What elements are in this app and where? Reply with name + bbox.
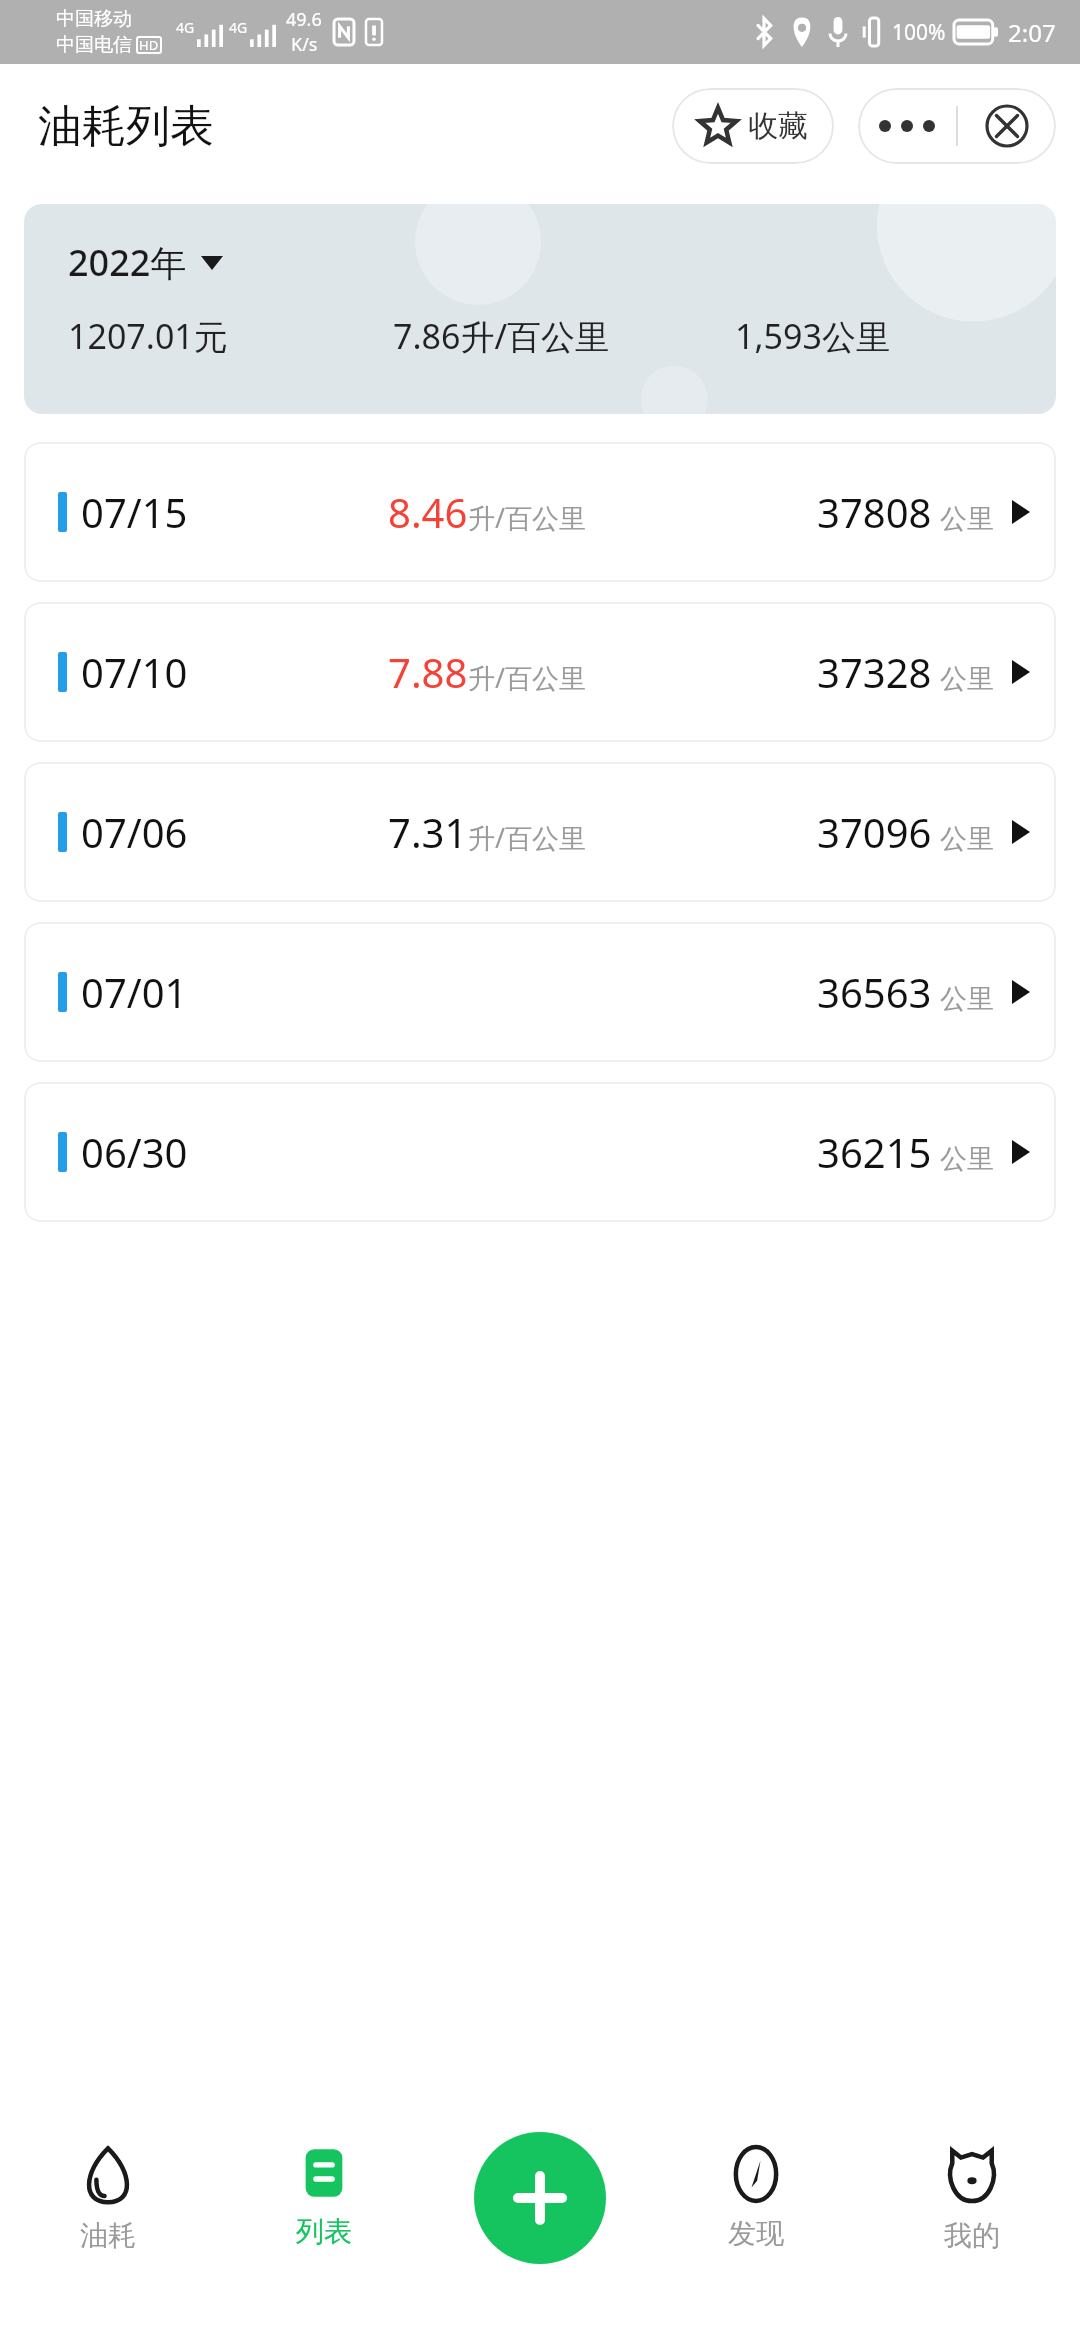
staticText: 7.86升/百公里: [393, 313, 735, 359]
staticText: 公里: [940, 982, 994, 1016]
staticText: 升/百公里: [468, 499, 587, 536]
staticText: 油耗: [80, 2218, 136, 2253]
staticText: 4G: [176, 18, 195, 37]
staticText: 07/15: [81, 485, 188, 539]
staticText: 100%: [892, 18, 946, 47]
staticText: 7.31: [388, 805, 468, 859]
staticText: 4G: [229, 18, 248, 37]
staticText: 7.88: [388, 645, 468, 699]
staticText: 37808: [817, 485, 932, 539]
staticText: 1,593公里: [735, 313, 1012, 359]
button[interactable]: Close: [958, 88, 1056, 164]
staticText: 公里: [940, 662, 994, 696]
button[interactable]: 07/10: [24, 602, 1056, 742]
staticText: 06/30: [81, 1125, 188, 1179]
staticText: 公里: [940, 822, 994, 856]
staticText: 07/10: [81, 645, 188, 699]
staticText: 36563: [817, 965, 932, 1019]
button[interactable]: 发现: [648, 2142, 864, 2255]
button[interactable]: Add record: [474, 2132, 606, 2264]
staticText: 公里: [940, 502, 994, 536]
button[interactable]: 我的: [864, 2142, 1080, 2257]
staticText: 公里: [940, 1142, 994, 1176]
button[interactable]: 06/30: [24, 1082, 1056, 1222]
staticText: 发现: [728, 2216, 784, 2251]
button[interactable]: 油耗: [0, 2142, 216, 2257]
button[interactable]: More options: [858, 88, 956, 164]
staticText: 2:07: [1008, 16, 1056, 49]
button[interactable]: 2022年: [68, 238, 223, 287]
button[interactable]: 07/01: [24, 922, 1056, 1062]
button[interactable]: 列表: [216, 2142, 432, 2253]
staticText: 中国移动: [56, 7, 132, 31]
staticText: 升/百公里: [468, 819, 587, 856]
staticText: 1207.01元: [68, 313, 393, 359]
staticText: 37096: [817, 805, 932, 859]
button[interactable]: 收藏: [672, 88, 834, 164]
staticText: 中国电信: [56, 33, 132, 57]
button[interactable]: 07/15: [24, 442, 1056, 582]
staticText: 我的: [944, 2218, 1000, 2253]
staticText: 07/01: [81, 965, 188, 1019]
staticText: K/s: [291, 32, 318, 57]
staticText: 36215: [817, 1125, 932, 1179]
staticText: 列表: [296, 2214, 352, 2249]
staticText: 收藏: [748, 107, 808, 145]
staticText: 07/06: [81, 805, 188, 859]
staticText: HD: [139, 36, 159, 54]
button[interactable]: 07/06: [24, 762, 1056, 902]
staticText: 升/百公里: [468, 659, 587, 696]
staticText: 8.46: [388, 485, 468, 539]
staticText: 油耗列表: [38, 99, 214, 154]
staticText: 2022年: [68, 238, 187, 287]
staticText: 49.6: [286, 7, 322, 32]
staticText: 37328: [817, 645, 932, 699]
